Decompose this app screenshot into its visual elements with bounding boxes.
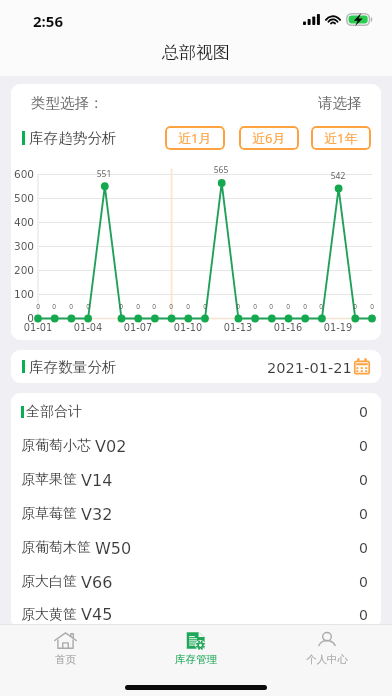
staticText: V66	[81, 573, 113, 592]
staticText: 0	[255, 302, 287, 311]
staticText: 0	[239, 302, 271, 311]
staticText: 0	[359, 540, 368, 556]
staticText: 近1月	[178, 129, 212, 147]
staticText: 200	[11, 264, 34, 276]
button[interactable]: Profile	[261, 625, 392, 670]
staticText: 0	[222, 302, 254, 311]
staticText: 0	[138, 302, 170, 311]
staticText: 2021-01-21	[267, 359, 352, 376]
staticText: V02	[95, 437, 127, 456]
staticText: 0	[289, 302, 321, 311]
button[interactable]: 类型选择：	[11, 84, 381, 122]
staticText: 库存趋势分析	[29, 129, 117, 147]
button[interactable]: 2021-01-21	[267, 358, 371, 376]
staticText: 库存管理	[175, 653, 217, 666]
staticText: 总部视图	[162, 42, 230, 63]
staticText: 600	[11, 168, 34, 180]
staticText: 原大黄筐	[21, 606, 77, 624]
staticText: V45	[81, 605, 113, 624]
staticText: 542	[322, 170, 354, 182]
button[interactable]: 近1年	[311, 126, 371, 150]
staticText: 0	[359, 607, 368, 623]
staticText: W50	[95, 539, 132, 558]
button[interactable]: 原葡萄木筐	[11, 531, 381, 565]
staticText: 0	[359, 472, 368, 488]
staticText: 01-04	[67, 322, 109, 333]
staticText: 01-16	[267, 322, 309, 333]
staticText: 库存数量分析	[29, 358, 117, 376]
staticText: 原苹果筐	[21, 471, 77, 489]
staticText: 原葡萄木筐	[21, 539, 91, 557]
staticText: 近6月	[252, 129, 286, 147]
staticText: 01-07	[117, 322, 159, 333]
staticText: 100	[11, 288, 34, 300]
staticText: 类型选择：	[31, 94, 104, 112]
staticText: 0	[189, 302, 221, 311]
staticText: 原葡萄小芯	[21, 437, 91, 455]
other: Pick date	[353, 358, 371, 376]
staticText: 01-19	[317, 322, 359, 333]
staticText: 0	[359, 404, 368, 420]
staticText: V32	[81, 505, 113, 524]
staticText: 0	[339, 302, 371, 311]
button[interactable]: Inventory	[130, 625, 261, 670]
staticText: 0	[359, 438, 368, 454]
button[interactable]: 原草莓筐	[11, 497, 381, 531]
staticText: 01-13	[217, 322, 259, 333]
staticText: 500	[11, 192, 34, 204]
button[interactable]: 原大白筐	[11, 565, 381, 599]
button[interactable]: 近1月	[165, 126, 225, 150]
staticText: 个人中心	[306, 653, 348, 666]
other: Home	[54, 632, 77, 649]
staticText: 0	[55, 302, 87, 311]
staticText: 0	[105, 302, 137, 311]
staticText: 0	[356, 302, 381, 311]
staticText: V14	[81, 471, 113, 490]
staticText: 全部合计	[26, 403, 82, 421]
staticText: 0	[72, 302, 104, 311]
staticText: 551	[88, 168, 120, 180]
staticText: 原大白筐	[21, 573, 77, 591]
staticText: 0	[38, 302, 70, 311]
button[interactable]: 原大黄筐	[11, 599, 381, 628]
staticText: 01-01	[17, 322, 59, 333]
button[interactable]: 原葡萄小芯	[11, 429, 381, 463]
button[interactable]: 原苹果筐	[11, 463, 381, 497]
button[interactable]: Home	[0, 625, 130, 670]
staticText: 01-10	[167, 322, 209, 333]
staticText: 0	[122, 302, 154, 311]
staticText: 0	[305, 302, 337, 311]
staticText: 0	[172, 302, 204, 311]
staticText: 300	[11, 240, 34, 252]
staticText: 0	[22, 302, 54, 311]
button[interactable]: 全部合计	[11, 395, 381, 429]
button[interactable]: 近6月	[239, 126, 299, 150]
staticText: 0	[359, 506, 368, 522]
staticText: 400	[11, 216, 34, 228]
other: Profile	[318, 632, 336, 649]
staticText: 原草莓筐	[21, 505, 77, 523]
staticText: 2:56	[33, 11, 63, 31]
staticText: 0	[272, 302, 304, 311]
staticText: 首页	[55, 653, 76, 666]
staticText: 0	[155, 302, 187, 311]
staticText: 0	[11, 312, 34, 324]
staticText: 0	[359, 574, 368, 590]
other: Inventory	[186, 632, 205, 649]
staticText: 565	[205, 164, 237, 176]
staticText: 近1年	[324, 129, 358, 147]
staticText: 请选择	[318, 94, 362, 112]
